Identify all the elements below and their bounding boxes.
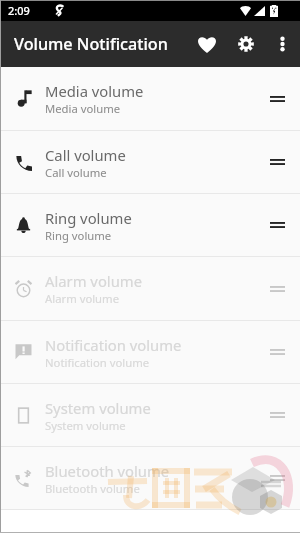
staticText: Notification volume (45, 355, 150, 370)
staticText: Ring volume (45, 228, 112, 243)
button[interactable]: Reorder (254, 384, 300, 446)
staticText: Volume Notification (14, 33, 168, 55)
staticText: 2:09 (8, 3, 30, 18)
staticText: Media volume (45, 81, 144, 101)
button[interactable]: Ring volume (0, 194, 300, 256)
button[interactable]: Call volume (0, 131, 300, 193)
button[interactable]: Alarm volume (0, 257, 300, 320)
staticText: Media volume (45, 101, 121, 116)
staticText: Bluetooth volume (45, 481, 140, 496)
staticText: Alarm volume (45, 291, 120, 306)
button[interactable]: Reorder (254, 257, 300, 320)
button[interactable]: Notification volume (0, 321, 300, 383)
staticText: System volume (45, 398, 151, 418)
staticText: Ring volume (45, 208, 132, 228)
button[interactable]: Favorite (188, 25, 226, 63)
button[interactable]: More options (266, 28, 298, 60)
staticText: System volume (45, 418, 126, 433)
button[interactable]: Settings (227, 25, 265, 63)
button[interactable]: System volume (0, 384, 300, 446)
button[interactable]: Reorder (254, 131, 300, 193)
staticText: Alarm volume (45, 271, 142, 291)
staticText: Call volume (45, 165, 107, 180)
button[interactable]: Media volume (0, 67, 300, 130)
staticText: Call volume (45, 145, 126, 165)
button[interactable]: Reorder (254, 67, 300, 130)
button[interactable]: Reorder (254, 194, 300, 256)
staticText: Notification volume (45, 335, 182, 355)
staticText: Bluetooth volume (45, 461, 170, 481)
button[interactable]: Bluetooth volume (0, 447, 300, 509)
button[interactable]: Reorder (254, 321, 300, 383)
button[interactable]: Reorder (254, 447, 300, 509)
